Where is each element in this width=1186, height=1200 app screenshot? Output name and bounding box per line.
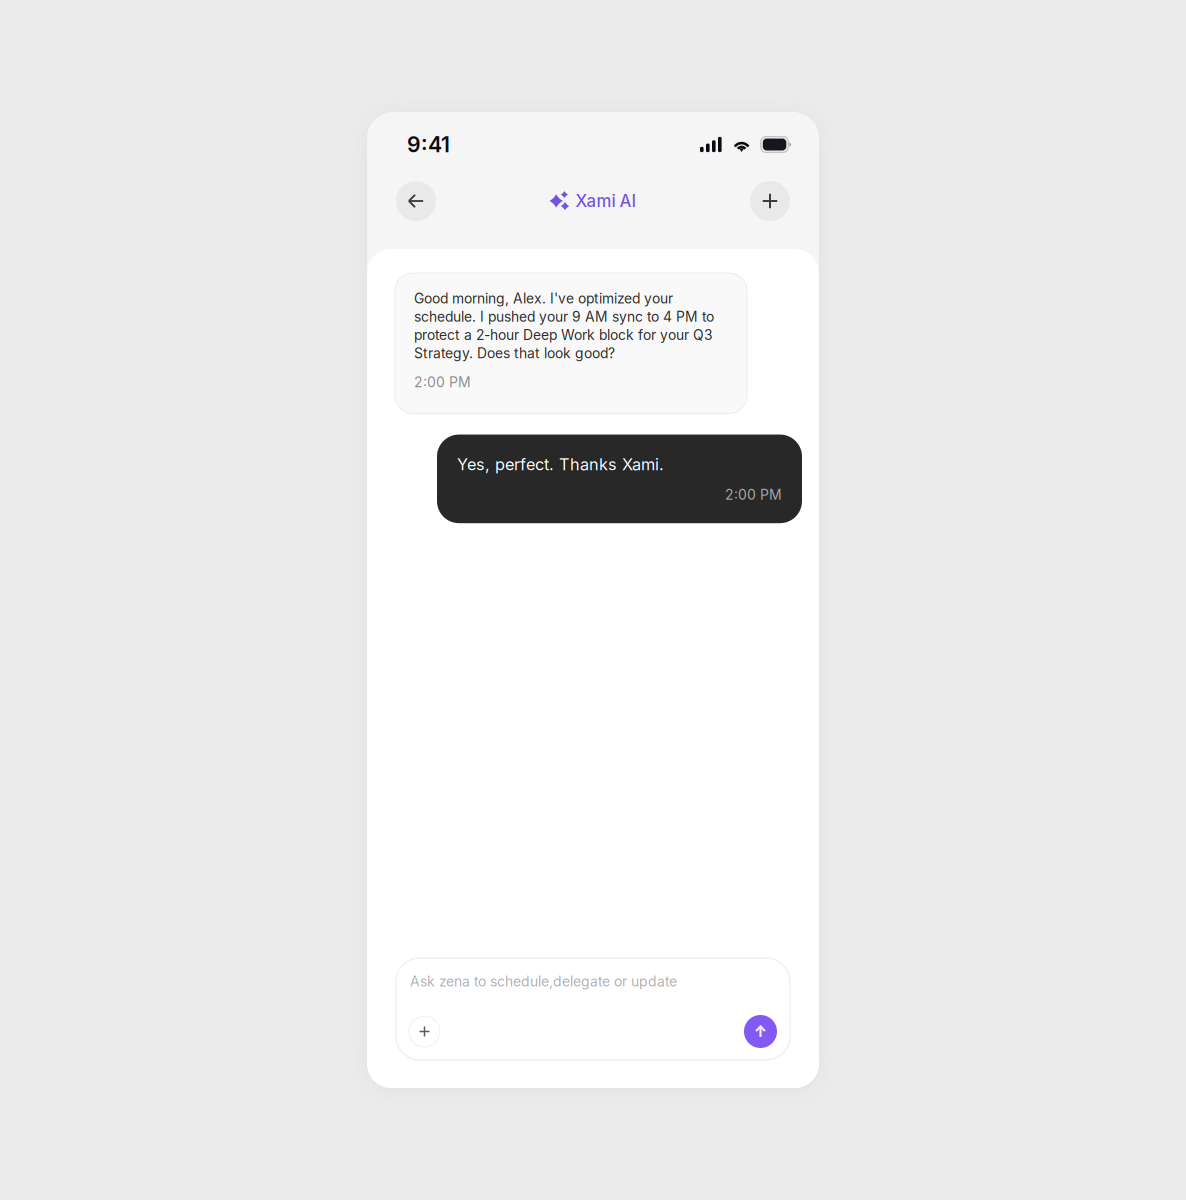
staticText: Xami AI bbox=[575, 191, 636, 211]
button[interactable]: Back bbox=[396, 181, 436, 221]
staticText: 2:00 PM bbox=[725, 486, 782, 503]
staticText: 2:00 PM bbox=[414, 374, 471, 390]
staticText: 9:41 bbox=[407, 132, 450, 157]
staticText: Good morning, Alex. I've optimized your … bbox=[414, 290, 714, 362]
button[interactable]: New chat bbox=[750, 181, 790, 221]
button[interactable]: Send bbox=[744, 1015, 777, 1048]
staticText: Yes, perfect. Thanks Xami. bbox=[457, 455, 664, 474]
staticText: Ask zena to schedule,delegate or update bbox=[410, 973, 677, 990]
button[interactable]: Add attachment bbox=[409, 1016, 440, 1047]
